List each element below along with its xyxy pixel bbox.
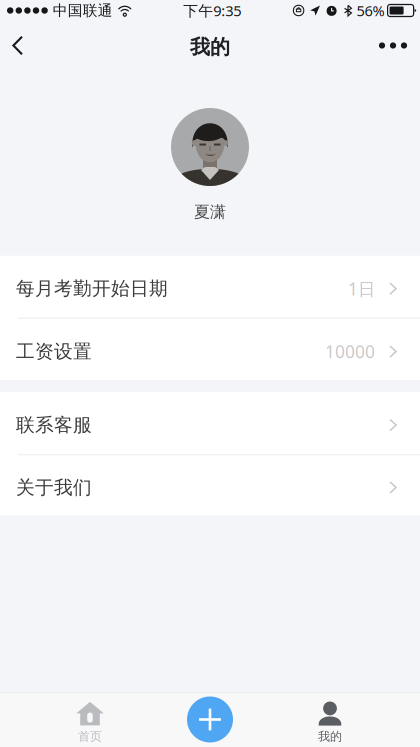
button[interactable]: Add — [150, 692, 270, 747]
staticText: 工资设置 — [16, 340, 92, 363]
button[interactable]: 关于我们 — [0, 455, 420, 515]
button[interactable]: 工资设置 — [0, 319, 420, 380]
staticText: 我的 — [318, 729, 342, 744]
button[interactable]: More — [372, 21, 414, 70]
staticText: 56% — [357, 1, 385, 20]
button[interactable]: 我的 — [270, 692, 390, 747]
button[interactable]: 首页 — [30, 692, 150, 747]
button[interactable]: 联系客服 — [0, 392, 420, 454]
staticText: 每月考勤开始日期 — [16, 277, 168, 300]
staticText: 10000 — [325, 340, 375, 363]
button[interactable]: Back — [0, 21, 36, 70]
staticText: 夏潇 — [194, 202, 226, 222]
button[interactable]: 每月考勤开始日期 — [0, 256, 420, 318]
staticText: 下午9:35 — [183, 1, 241, 20]
staticText: 联系客服 — [16, 414, 92, 436]
staticText: 首页 — [78, 729, 102, 744]
staticText: 关于我们 — [16, 476, 92, 499]
staticText: 中国联通 — [53, 1, 113, 19]
staticText: 我的 — [190, 35, 230, 59]
staticText: 1日 — [348, 277, 375, 300]
